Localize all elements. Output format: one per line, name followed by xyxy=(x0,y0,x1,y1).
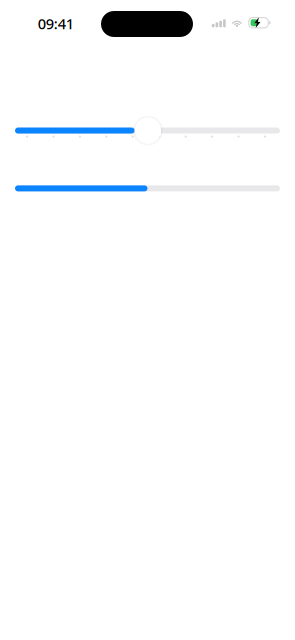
button[interactable]: Progress slider xyxy=(15,185,280,191)
staticText: 09:41 xyxy=(38,14,74,33)
button[interactable]: Slider xyxy=(15,117,280,144)
